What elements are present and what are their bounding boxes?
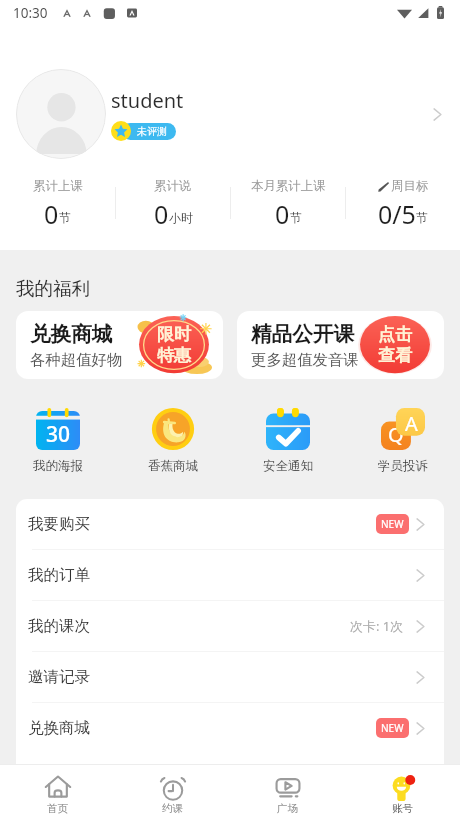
- staticText: 兑换商城: [28, 718, 90, 738]
- staticText: 我的课次: [28, 616, 90, 636]
- staticText: student: [111, 87, 184, 114]
- staticText: 10:30: [13, 4, 48, 22]
- staticText: 约课: [162, 802, 183, 815]
- staticText: 节: [59, 210, 71, 225]
- button[interactable]: 约课: [115, 765, 230, 817]
- staticText: 精品公开课: [251, 321, 354, 347]
- button[interactable]: Q: [345, 408, 460, 474]
- staticText: 首页: [47, 802, 68, 815]
- staticText: 限时: [157, 324, 191, 345]
- staticText: NEW: [381, 517, 404, 531]
- staticText: 30: [46, 420, 71, 449]
- button[interactable]: 兑换商城: [16, 311, 223, 379]
- staticText: 我的海报: [33, 458, 83, 474]
- staticText: 学员投诉: [378, 458, 428, 474]
- button[interactable]: 首页: [0, 765, 115, 817]
- staticText: 账号: [392, 802, 413, 815]
- staticText: 各种超值好物: [30, 350, 123, 369]
- staticText: 兑换商城: [30, 321, 113, 347]
- button[interactable]: 精品公开课: [237, 311, 444, 379]
- staticText: 未评测: [137, 125, 167, 138]
- staticText: 我的福利: [16, 277, 90, 300]
- button[interactable]: 我要购买: [16, 499, 444, 550]
- staticText: 香蕉商城: [148, 458, 198, 474]
- staticText: 点击: [378, 324, 412, 345]
- button[interactable]: 香蕉商城: [115, 408, 230, 474]
- staticText: 周目标: [391, 178, 429, 194]
- staticText: 我要购买: [28, 514, 90, 534]
- button[interactable]: 广场: [230, 765, 345, 817]
- staticText: 邀请记录: [28, 667, 90, 687]
- staticText: NEW: [381, 721, 404, 735]
- button[interactable]: 累计上课: [0, 178, 115, 228]
- button[interactable]: 累计说: [116, 178, 230, 228]
- button[interactable]: 本月累计上课: [231, 178, 345, 228]
- staticText: 本月累计上课: [251, 178, 326, 194]
- button[interactable]: 邀请记录: [16, 652, 444, 703]
- staticText: Q: [388, 421, 404, 448]
- staticText: 累计上课: [33, 178, 83, 194]
- staticText: 0: [44, 197, 59, 228]
- staticText: 0/5: [378, 197, 416, 228]
- button[interactable]: 周目标: [346, 178, 460, 228]
- button[interactable]: 安全通知: [230, 408, 345, 474]
- button[interactable]: 兑换商城: [16, 703, 444, 753]
- button[interactable]: student: [0, 33, 460, 159]
- button[interactable]: 账号: [345, 765, 460, 817]
- staticText: 节: [290, 210, 302, 225]
- staticText: 安全通知: [263, 458, 313, 474]
- button[interactable]: 我的课次: [16, 601, 444, 652]
- staticText: 更多超值发音课: [251, 350, 359, 369]
- staticText: 我的订单: [28, 565, 90, 585]
- staticText: 次卡: 1次: [350, 617, 404, 635]
- staticText: 特惠: [157, 345, 191, 366]
- staticText: 节: [416, 210, 428, 225]
- staticText: 查看: [378, 345, 412, 366]
- staticText: 广场: [277, 802, 298, 815]
- staticText: 小时: [169, 210, 193, 225]
- button[interactable]: 30: [0, 408, 115, 474]
- staticText: 0: [275, 197, 290, 228]
- staticText: 累计说: [154, 178, 192, 194]
- button[interactable]: 我的订单: [16, 550, 444, 601]
- staticText: 0: [154, 197, 169, 228]
- staticText: A: [405, 410, 418, 437]
